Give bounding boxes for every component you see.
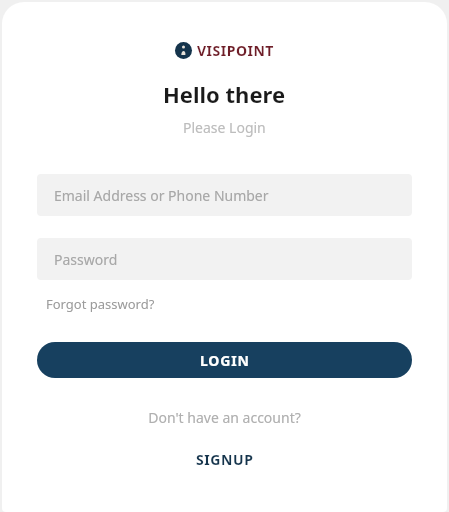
staticText: SIGNUP	[196, 450, 254, 469]
staticText: Email Address or Phone Number	[54, 186, 269, 205]
button[interactable]: LOGIN	[37, 342, 412, 378]
button[interactable]: SIGNUP	[186, 446, 264, 473]
button[interactable]: Don't have an account?	[140, 405, 309, 430]
staticText: Don't have an account?	[148, 408, 301, 427]
staticText: Hello there	[163, 79, 286, 109]
staticText: Password	[54, 250, 118, 269]
staticText: Forgot password?	[46, 295, 155, 313]
staticText: Please Login	[183, 118, 266, 137]
staticText: VISIPOINT	[197, 41, 274, 60]
button[interactable]: Forgot password?	[37, 292, 164, 316]
button[interactable]: Password	[37, 238, 412, 280]
button[interactable]: Email Address or Phone Number	[37, 174, 412, 216]
staticText: LOGIN	[200, 351, 250, 370]
